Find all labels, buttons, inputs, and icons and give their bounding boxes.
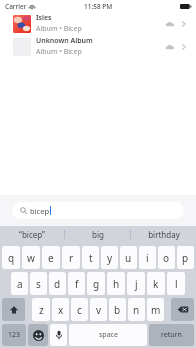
staticText: q xyxy=(8,251,15,265)
button[interactable]: t xyxy=(82,246,99,269)
button[interactable]: u xyxy=(120,246,137,269)
staticText: bicep xyxy=(30,206,49,216)
button[interactable]: j xyxy=(127,272,145,295)
staticText: t xyxy=(89,251,93,265)
button[interactable]: z xyxy=(32,298,50,321)
button[interactable]: k xyxy=(147,272,165,295)
staticText: a xyxy=(17,277,23,291)
staticText: r xyxy=(69,251,74,265)
button[interactable]: q xyxy=(2,246,20,269)
staticText: k xyxy=(153,277,159,291)
staticText: Album • Bicep xyxy=(36,24,82,34)
button[interactable]: i xyxy=(139,246,156,269)
button[interactable]: Unknown Album xyxy=(0,35,196,58)
button[interactable]: birthday xyxy=(131,226,196,243)
staticText: y xyxy=(107,251,113,265)
button[interactable]: Backspace xyxy=(171,298,194,321)
staticText: 123 xyxy=(8,330,21,340)
staticText: Unknown Album xyxy=(36,36,93,46)
staticText: o xyxy=(163,251,170,265)
staticText: m xyxy=(151,303,161,317)
button[interactable]: 123 xyxy=(2,324,26,346)
button[interactable]: e xyxy=(42,246,60,269)
button[interactable]: Isles xyxy=(0,12,196,35)
staticText: w xyxy=(27,251,35,265)
staticText: c xyxy=(77,303,82,317)
staticText: v xyxy=(96,303,102,317)
button[interactable]: p xyxy=(177,246,194,269)
button[interactable]: g xyxy=(87,272,105,295)
button[interactable]: Emoji xyxy=(28,324,48,346)
staticText: p xyxy=(182,251,189,265)
button[interactable]: v xyxy=(90,298,107,321)
staticText: birthday xyxy=(148,229,180,240)
button[interactable]: big xyxy=(65,226,130,243)
staticText: l xyxy=(175,277,178,291)
button[interactable]: w xyxy=(22,246,40,269)
button[interactable]: f xyxy=(68,272,85,295)
staticText: “bicep” xyxy=(19,229,45,240)
staticText: b xyxy=(114,303,121,317)
button[interactable]: d xyxy=(49,272,66,295)
button[interactable]: n xyxy=(128,298,145,321)
staticText: f xyxy=(75,277,79,291)
staticText: n xyxy=(133,303,140,317)
button[interactable]: Shift xyxy=(2,298,25,321)
button[interactable]: r xyxy=(62,246,80,269)
staticText: Isles xyxy=(36,13,52,23)
staticText: 11:58 PM xyxy=(84,2,113,11)
button[interactable]: m xyxy=(147,298,164,321)
staticText: Album • Bicep xyxy=(36,47,82,57)
staticText: big xyxy=(92,229,104,240)
staticText: h xyxy=(113,277,120,291)
staticText: u xyxy=(125,251,132,265)
button[interactable]: bicep xyxy=(12,202,184,219)
staticText: d xyxy=(54,277,61,291)
button[interactable]: c xyxy=(71,298,88,321)
staticText: x xyxy=(58,303,64,317)
button[interactable]: Dictate xyxy=(50,324,67,346)
button[interactable]: l xyxy=(167,272,185,295)
staticText: s xyxy=(36,277,41,291)
button[interactable]: s xyxy=(30,272,47,295)
staticText: space xyxy=(99,330,118,340)
button[interactable]: b xyxy=(109,298,126,321)
button[interactable]: a xyxy=(11,272,28,295)
button[interactable]: “bicep” xyxy=(0,226,64,243)
staticText: j xyxy=(135,277,138,291)
other: Download from cloud xyxy=(165,20,175,28)
button[interactable]: space xyxy=(69,324,147,346)
button[interactable]: x xyxy=(52,298,69,321)
staticText: i xyxy=(146,251,149,265)
staticText: z xyxy=(39,303,44,317)
staticText: Carrier xyxy=(5,2,27,11)
button[interactable]: h xyxy=(107,272,125,295)
button[interactable]: return xyxy=(149,324,194,346)
staticText: g xyxy=(93,277,100,291)
button[interactable]: y xyxy=(101,246,118,269)
staticText: return xyxy=(161,330,182,340)
other: Download from cloud xyxy=(165,43,175,51)
button[interactable]: o xyxy=(158,246,175,269)
staticText: e xyxy=(48,251,54,265)
